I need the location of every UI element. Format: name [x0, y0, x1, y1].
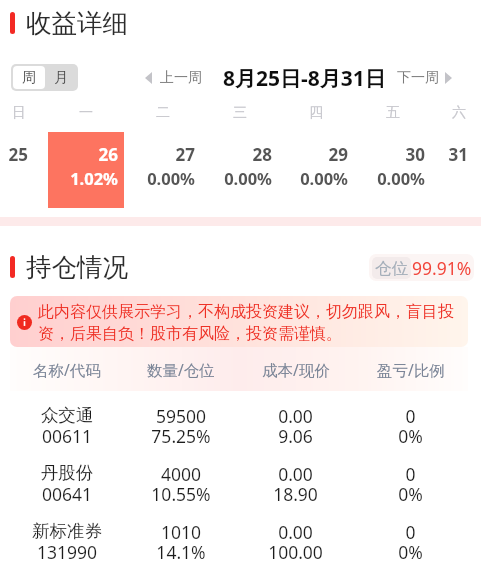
staticText: 4000 [124, 462, 238, 486]
staticText: 0.00 [238, 462, 353, 486]
staticText: 四 [276, 104, 356, 122]
staticText: 99.91% [412, 256, 472, 280]
staticText: 10.55% [124, 482, 238, 506]
staticText: 名称/代码 [33, 359, 101, 380]
staticText: 三 [200, 104, 280, 122]
staticText: 持仓情况 [26, 251, 128, 283]
staticText: 26 [38, 143, 118, 166]
staticText: 0 [353, 404, 468, 428]
button[interactable]: 月 [45, 66, 76, 89]
staticText: 下一周 [397, 69, 439, 87]
staticText: 31 [388, 143, 468, 166]
button[interactable]: 新标准券 [10, 507, 468, 565]
staticText: 29 [268, 143, 348, 166]
staticText: 131990 [10, 540, 124, 564]
staticText: 8月25日-8月31日 [223, 64, 386, 93]
button[interactable]: 26 [38, 132, 118, 208]
staticText: 0.00% [192, 167, 272, 189]
staticText: 00641 [10, 482, 124, 506]
staticText: 0.00 [238, 404, 353, 428]
staticText: 27 [115, 143, 195, 166]
staticText: 0.00 [238, 520, 353, 544]
staticText: 30 [345, 143, 425, 166]
staticText: 五 [353, 104, 433, 122]
staticText: 一 [46, 104, 126, 122]
staticText: 25 [0, 143, 28, 166]
button[interactable]: 丹股份 [10, 449, 468, 507]
staticText: 周 [22, 69, 36, 87]
staticText: 75.25% [124, 424, 238, 448]
button[interactable]: 31 [388, 132, 468, 208]
staticText: 收益详细 [26, 7, 128, 39]
staticText: 9.06 [238, 424, 353, 448]
staticText: 0% [353, 540, 468, 564]
staticText: 成本/现价 [262, 359, 330, 380]
button[interactable]: 29 [268, 132, 348, 208]
button[interactable]: 27 [115, 132, 195, 208]
staticText: 众交通 [10, 404, 124, 426]
staticText: 新标准券 [10, 520, 124, 542]
staticText: 00611 [10, 424, 124, 448]
staticText: 盈亏/比例 [377, 359, 445, 380]
staticText: 上一周 [160, 69, 202, 87]
staticText: 六 [419, 104, 481, 122]
button[interactable]: 25 [0, 132, 28, 208]
staticText: 二 [123, 104, 203, 122]
staticText: 100.00 [238, 540, 353, 564]
button[interactable]: 30 [345, 132, 425, 208]
staticText: 数量/仓位 [147, 359, 215, 380]
staticText: 18.90 [238, 482, 353, 506]
button[interactable]: 上一周 [145, 66, 202, 90]
staticText: 仓位 [375, 258, 408, 279]
button[interactable]: 提示 [10, 296, 468, 347]
staticText: 28 [192, 143, 272, 166]
staticText: 日 [0, 104, 59, 122]
staticText: 0.00% [345, 167, 425, 189]
staticText: 59500 [124, 404, 238, 428]
staticText: 丹股份 [10, 462, 124, 484]
staticText: 此内容仅供展示学习，不构成投资建议，切勿跟风，盲目投资，后果自负！股市有风险，投… [38, 302, 464, 344]
staticText: 1010 [124, 520, 238, 544]
staticText: 0.00% [115, 167, 195, 189]
button[interactable]: 众交通 [10, 391, 468, 449]
staticText: 0 [353, 462, 468, 486]
staticText: 0.00% [268, 167, 348, 189]
other: 提示 [17, 315, 32, 330]
button[interactable]: 周 [13, 66, 45, 89]
button[interactable]: 28 [192, 132, 272, 208]
button[interactable]: 仓位 [369, 254, 474, 281]
button[interactable]: 下一周 [397, 66, 452, 90]
staticText: 14.1% [124, 540, 238, 564]
staticText: 月 [54, 69, 68, 87]
staticText: 0 [353, 520, 468, 544]
staticText: 0% [353, 424, 468, 448]
staticText: 1.02% [38, 167, 118, 189]
staticText: 0% [353, 482, 468, 506]
